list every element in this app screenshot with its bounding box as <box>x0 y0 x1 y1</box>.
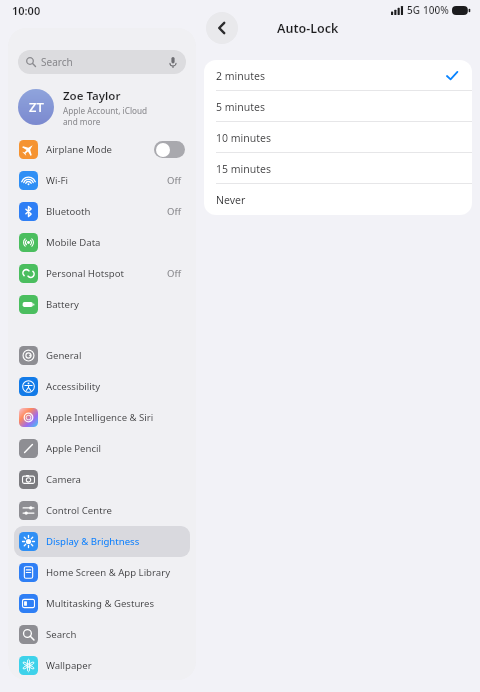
button[interactable]: Apple Pencil <box>14 433 190 464</box>
button[interactable]: Display & Brightness <box>14 526 190 557</box>
staticText: 10 minutes <box>216 131 271 145</box>
staticText: Multitasking & Gestures <box>46 597 155 610</box>
button[interactable]: Airplane Mode <box>14 134 190 165</box>
staticText: Airplane Mode <box>46 143 112 156</box>
staticText: Auto-Lock <box>277 20 339 37</box>
staticText: Off <box>167 174 181 187</box>
staticText: Apple Account, iCloud <box>63 105 148 116</box>
button[interactable]: Never <box>204 184 472 215</box>
staticText: Search <box>46 628 77 641</box>
button[interactable]: Mobile Data <box>14 227 190 258</box>
staticText: 5G <box>407 3 420 17</box>
button[interactable]: 2 minutes <box>204 60 472 91</box>
staticText: Off <box>167 205 181 218</box>
button[interactable]: Wallpaper <box>14 650 190 680</box>
button[interactable]: 5 minutes <box>204 91 472 122</box>
staticText: 100% <box>423 3 449 17</box>
staticText: 15 minutes <box>216 162 271 176</box>
button[interactable]: Search <box>14 619 190 650</box>
staticText: Bluetooth <box>46 205 91 218</box>
button[interactable]: 10 minutes <box>204 122 472 153</box>
staticText: Accessibility <box>46 380 101 393</box>
staticText: Wi-Fi <box>46 174 68 187</box>
button[interactable]: Accessibility <box>14 371 190 402</box>
button[interactable]: Personal Hotspot <box>14 258 190 289</box>
staticText: Zoe Taylor <box>63 88 121 104</box>
staticText: Off <box>167 267 181 280</box>
button[interactable]: 15 minutes <box>204 153 472 184</box>
button[interactable]: Search <box>18 50 186 74</box>
button[interactable]: Bluetooth <box>14 196 190 227</box>
button[interactable]: Multitasking & Gestures <box>14 588 190 619</box>
staticText: General <box>46 349 82 362</box>
button[interactable]: Control Centre <box>14 495 190 526</box>
staticText: Home Screen & App Library <box>46 566 171 579</box>
staticText: 10:00 <box>12 3 41 18</box>
staticText: Personal Hotspot <box>46 267 124 280</box>
staticText: Apple Intelligence & Siri <box>46 411 154 424</box>
staticText: ZT <box>29 98 44 116</box>
staticText: Display & Brightness <box>46 535 140 548</box>
staticText: Apple Pencil <box>46 442 102 455</box>
staticText: 2 minutes <box>216 69 265 83</box>
staticText: Wallpaper <box>46 659 92 672</box>
staticText: Camera <box>46 473 81 486</box>
staticText: Search <box>41 55 73 69</box>
staticText: 5 minutes <box>216 100 265 114</box>
button[interactable]: Camera <box>14 464 190 495</box>
button[interactable]: Back <box>206 12 238 44</box>
button[interactable]: General <box>14 340 190 371</box>
staticText: Mobile Data <box>46 236 101 249</box>
staticText: Control Centre <box>46 504 112 517</box>
button[interactable]: Home Screen & App Library <box>14 557 190 588</box>
button[interactable]: Battery <box>14 289 190 320</box>
button[interactable]: Wi-Fi <box>14 165 190 196</box>
staticText: Battery <box>46 298 79 311</box>
staticText: and more <box>63 116 101 127</box>
button[interactable]: Airplane Mode toggle <box>154 141 185 158</box>
button[interactable]: Apple Intelligence & Siri <box>14 402 190 433</box>
staticText: Never <box>216 193 246 207</box>
button[interactable]: ZT <box>18 84 186 130</box>
